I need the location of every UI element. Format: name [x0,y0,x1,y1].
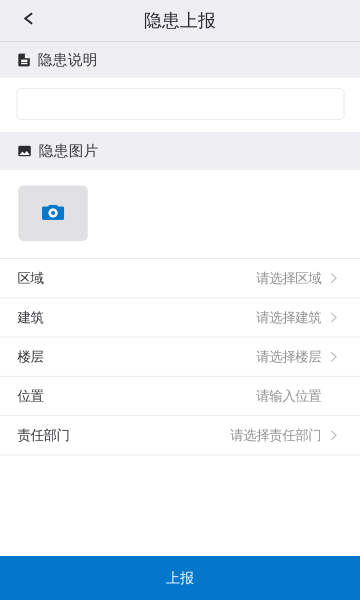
staticText: 请输入位置 [256,388,321,405]
staticText: 区域 [17,270,43,287]
button[interactable]: 责任部门 [0,416,360,455]
staticText: 隐患说明 [38,51,98,69]
staticText: 隐患图片 [39,142,99,160]
staticText: 位置 [17,388,43,405]
button[interactable]: 区域 [0,259,360,298]
button[interactable]: Back [0,0,57,41]
staticText: 请选择建筑 [256,309,321,326]
button[interactable]: Add photo [18,185,88,241]
button[interactable]: 上报 [0,556,360,600]
staticText: 请选择楼层 [256,348,321,365]
button[interactable]: 位置 [0,377,360,416]
staticText: 请选择责任部门 [230,427,321,444]
button[interactable]: 楼层 [0,338,360,377]
staticText: 隐患上报 [144,9,216,32]
staticText: 上报 [166,569,194,587]
button[interactable]: 建筑 [0,298,360,338]
staticText: 楼层 [17,348,43,365]
staticText: 责任部门 [17,427,69,444]
staticText: 建筑 [17,309,43,326]
staticText: 请选择区域 [256,270,321,287]
